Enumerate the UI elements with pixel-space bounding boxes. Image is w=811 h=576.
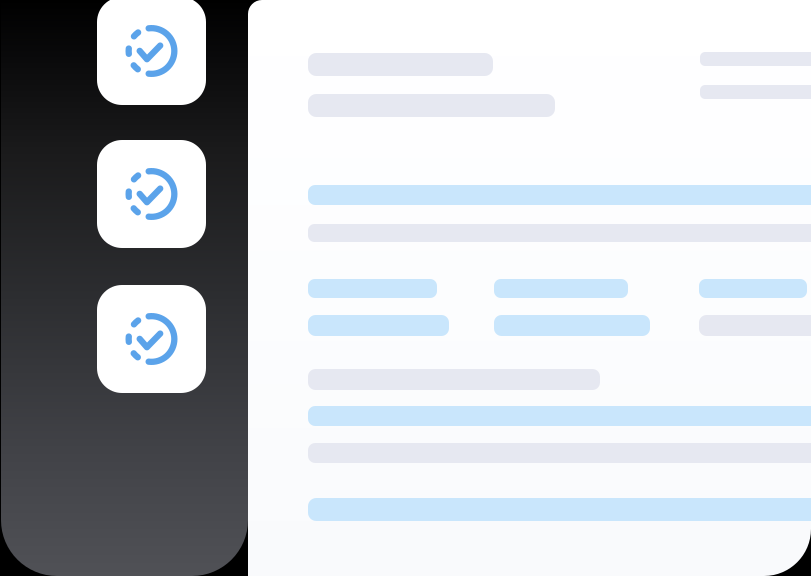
button[interactable]: Task progress <box>97 140 206 248</box>
button[interactable]: Task progress <box>97 285 206 393</box>
button[interactable]: Task progress <box>97 0 206 105</box>
